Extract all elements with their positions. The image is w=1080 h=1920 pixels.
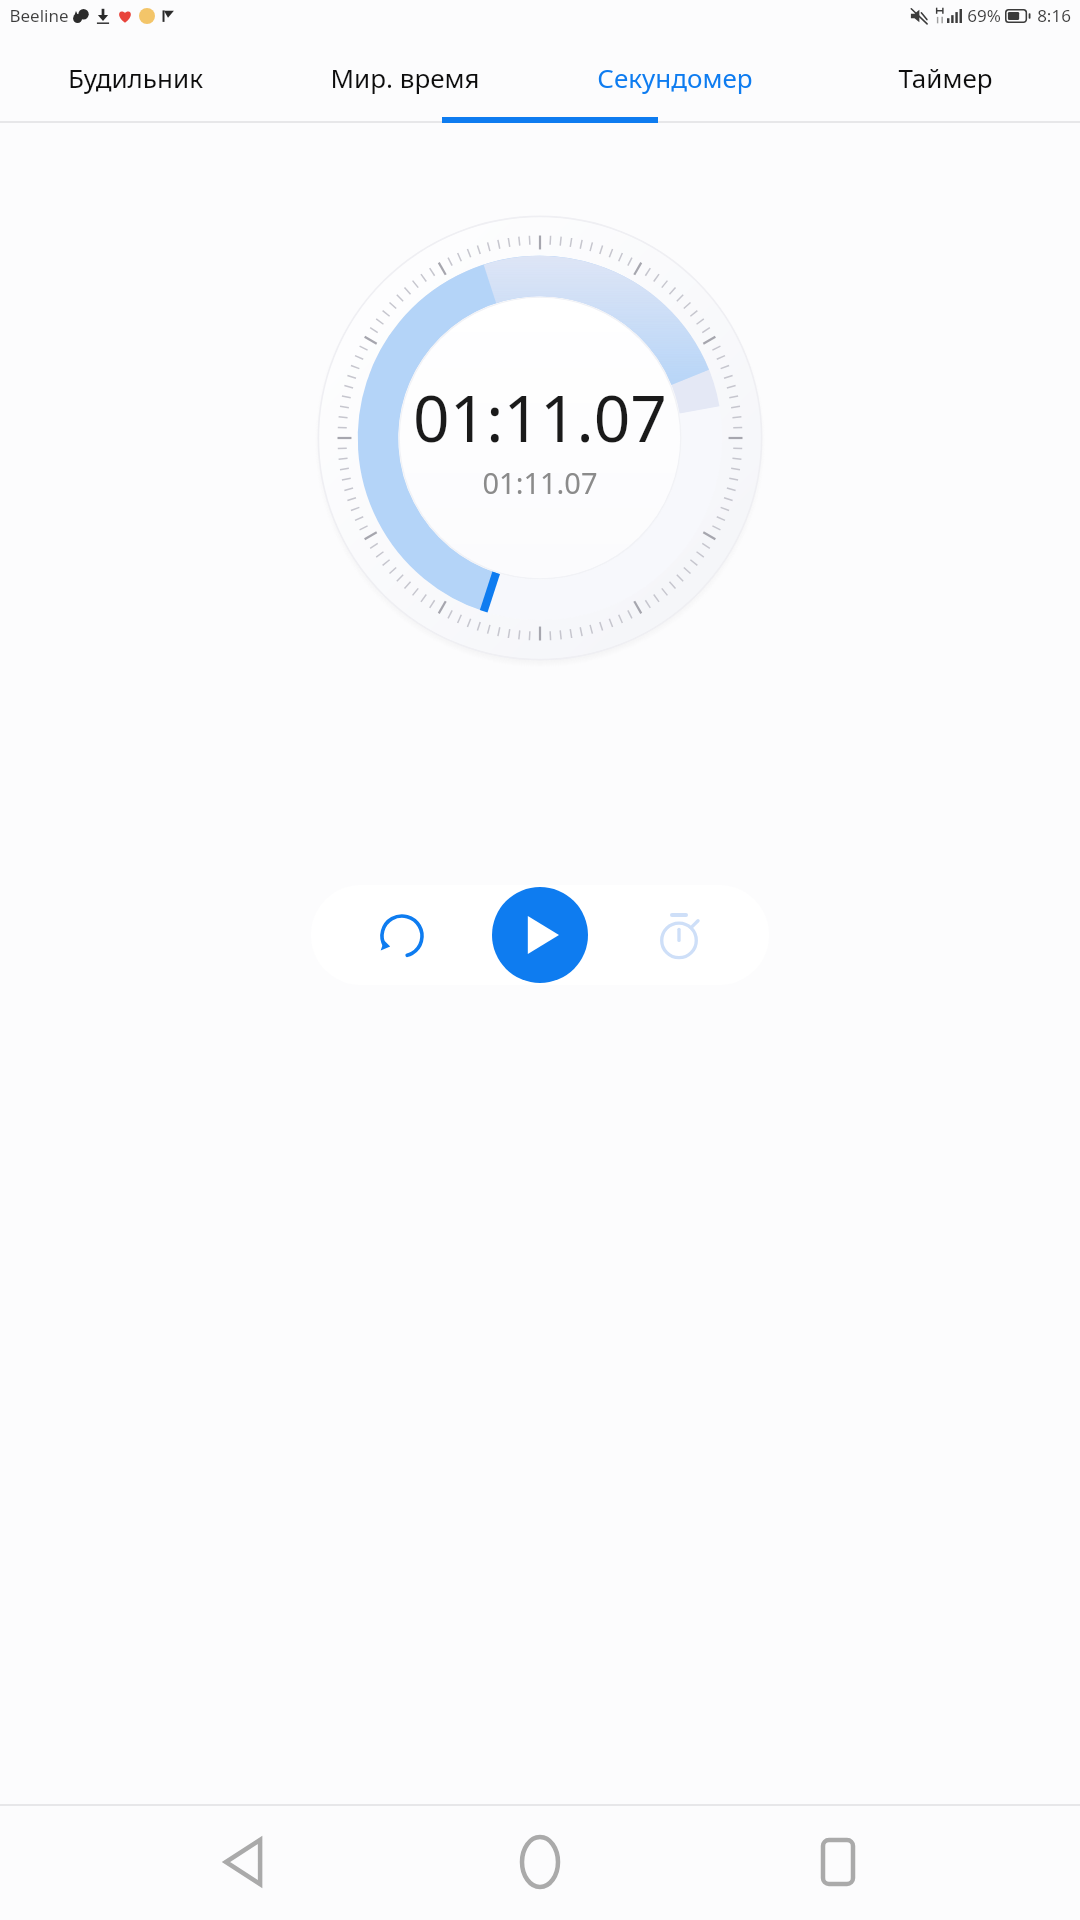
button[interactable]: Главный экран <box>485 1807 595 1917</box>
staticText: Beeline <box>9 4 69 27</box>
button[interactable]: Секундомер <box>540 31 810 123</box>
staticText: 01:11.07 <box>482 463 598 502</box>
staticText: 8:16 <box>1037 4 1071 27</box>
staticText: 69% <box>967 4 1001 27</box>
staticText: Таймер <box>898 60 993 95</box>
button[interactable]: Назад <box>188 1807 298 1917</box>
button[interactable]: Таймер <box>810 31 1080 123</box>
button[interactable]: Запустить <box>492 887 588 983</box>
staticText: 01:11.07 <box>413 374 667 461</box>
staticText: Секундомер <box>597 60 753 95</box>
button[interactable]: Недавние приложения <box>783 1807 893 1917</box>
staticText: Мир. время <box>330 60 480 95</box>
button[interactable]: Сбросить <box>355 888 449 982</box>
button[interactable]: Будильник <box>0 31 270 123</box>
button[interactable]: Мир. время <box>270 31 540 123</box>
staticText: Будильник <box>68 60 203 95</box>
button[interactable]: Круг <box>632 888 726 982</box>
